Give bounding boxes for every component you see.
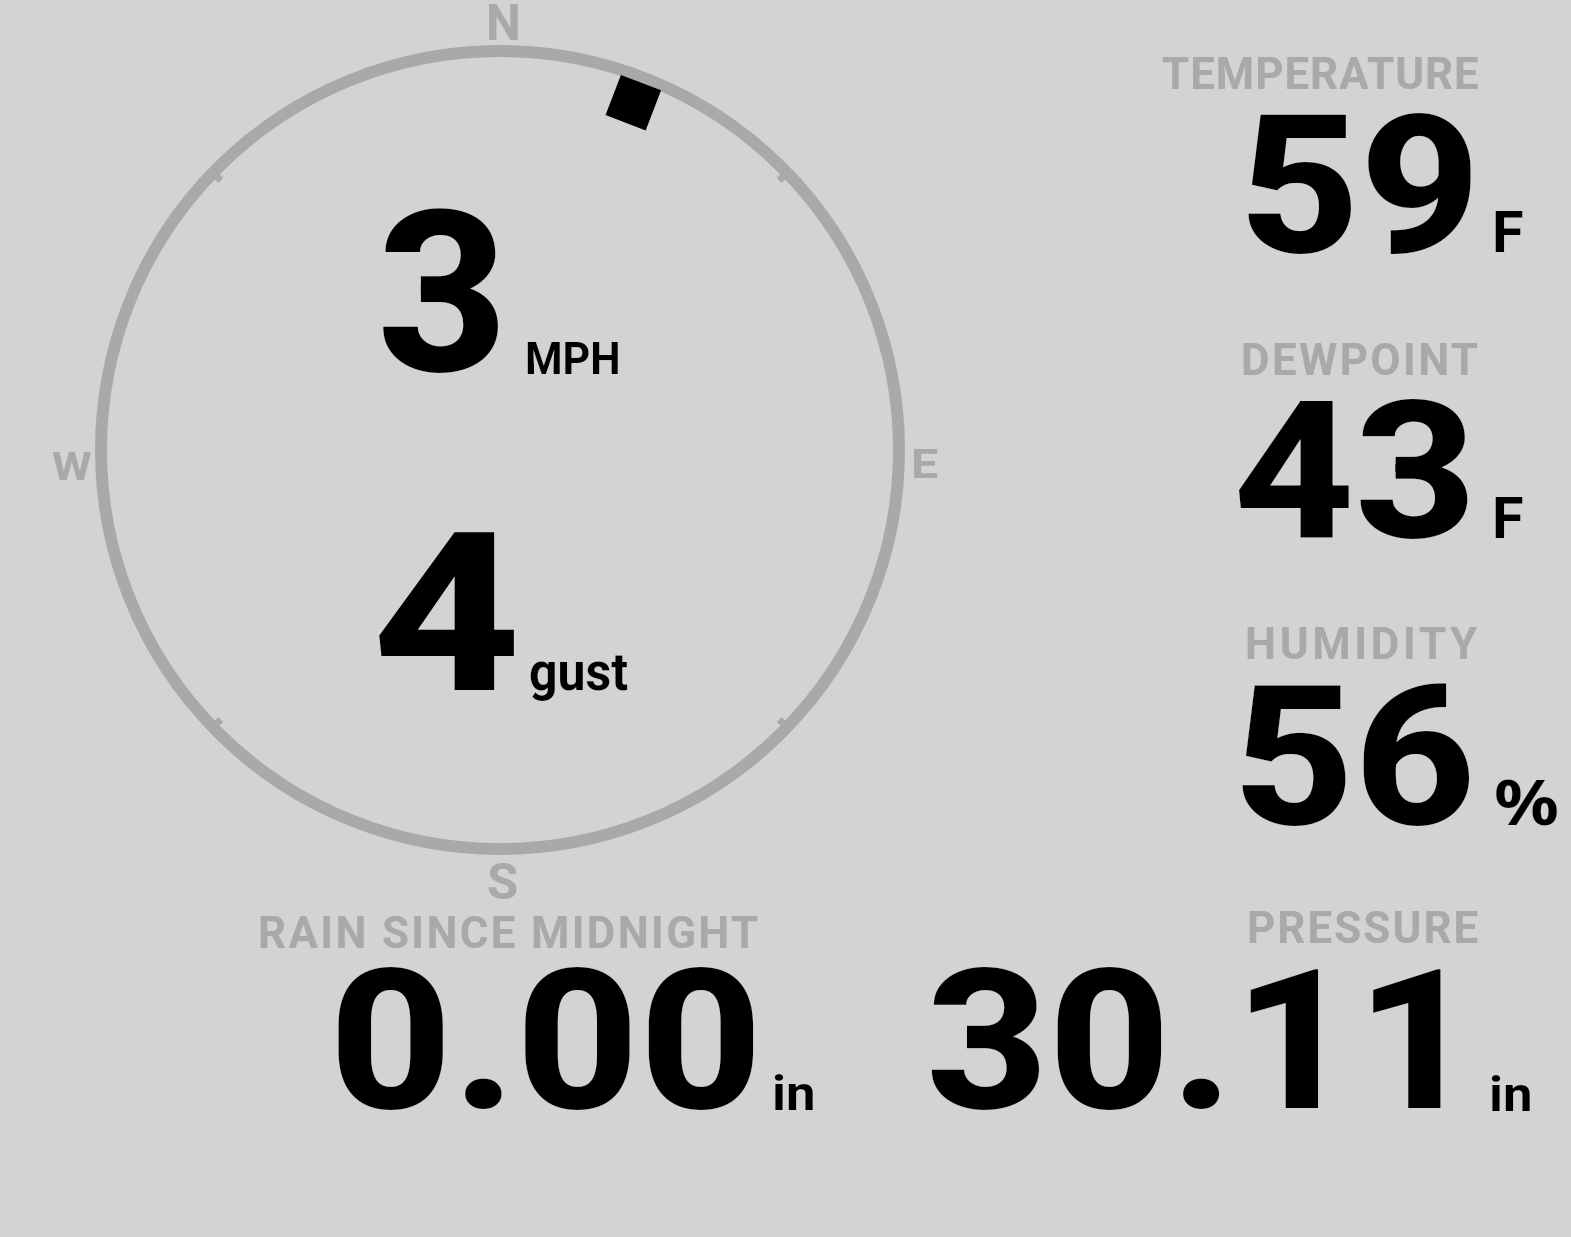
staticText: 4 (372, 484, 521, 744)
staticText: 43 (1233, 360, 1477, 583)
staticText: DEWPOINT (1241, 334, 1481, 385)
button[interactable]: Humidity 56 percent (1100, 605, 1571, 875)
staticText: 59 (1239, 73, 1481, 299)
staticText: PRESSURE (1247, 902, 1481, 953)
button[interactable]: Temperature 59 degrees Fahrenheit (1100, 40, 1571, 310)
staticText: F (1492, 485, 1524, 552)
button[interactable]: Wind direction compass, 3 miles per hour… (60, 20, 940, 890)
staticText: E (911, 440, 939, 488)
staticText: S (487, 852, 519, 911)
staticText: HUMIDITY (1245, 618, 1481, 669)
staticText: TEMPERATURE (1162, 48, 1480, 99)
staticText: in (772, 1066, 816, 1122)
button[interactable]: Pressure 30.11 inches (880, 895, 1571, 1130)
staticText: % (1494, 759, 1560, 844)
staticText: 0.00 (329, 928, 763, 1156)
staticText: 3 (377, 163, 508, 426)
button[interactable]: Rain since midnight 0.00 inches (200, 900, 850, 1130)
staticText: in (1489, 1067, 1533, 1123)
staticText: 30.11 (926, 928, 1479, 1156)
staticText: N (486, 0, 521, 52)
staticText: gust (529, 642, 629, 703)
staticText: W (52, 444, 92, 489)
staticText: RAIN SINCE MIDNIGHT (258, 907, 761, 958)
button[interactable]: Dew point 43 degrees Fahrenheit (1100, 325, 1571, 590)
staticText: 56 (1233, 644, 1476, 872)
staticText: MPH (525, 333, 621, 384)
staticText: F (1492, 199, 1524, 266)
